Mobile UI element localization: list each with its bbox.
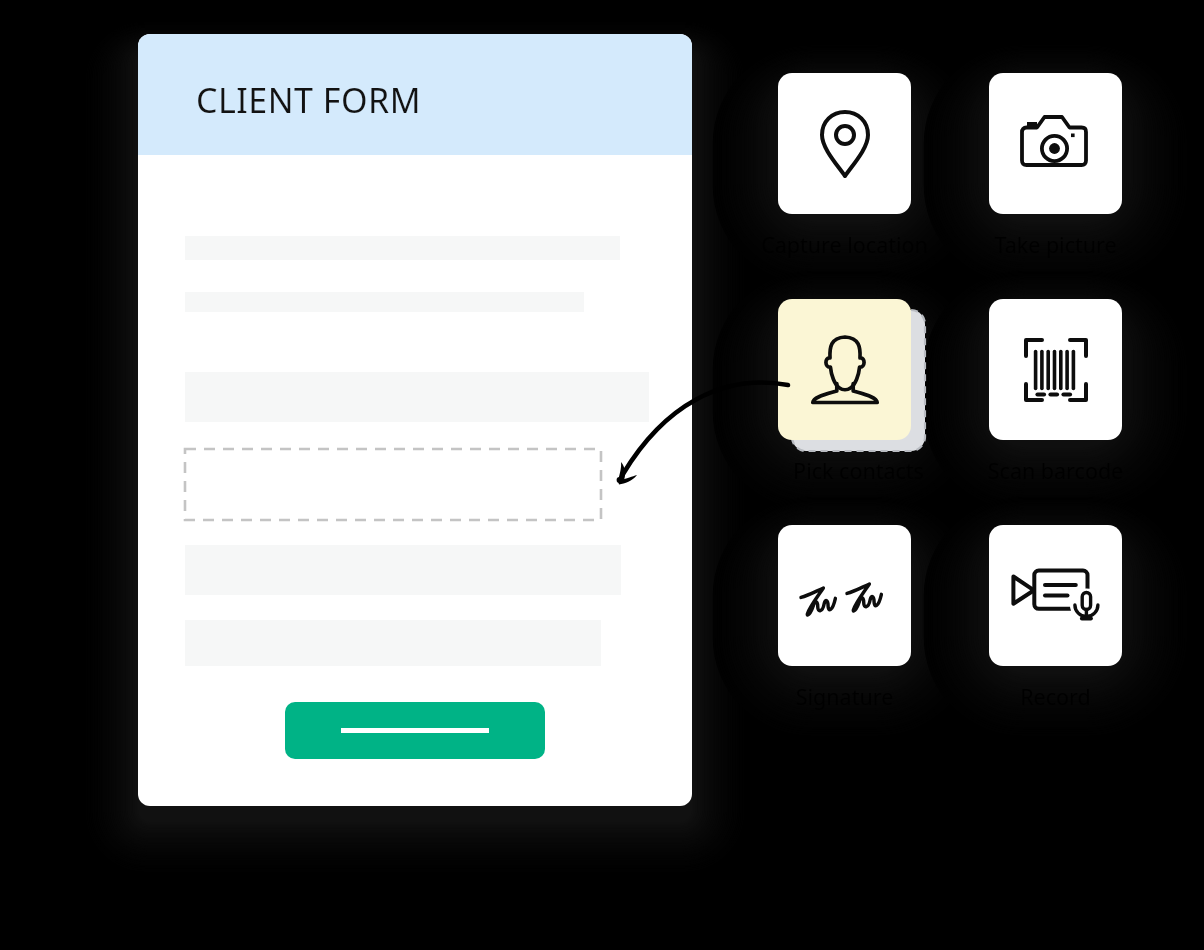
staticText: CLIENT FORM	[196, 77, 422, 123]
button[interactable]: Scan barcode	[989, 299, 1122, 440]
staticText: Scan barcode	[944, 456, 1167, 485]
button[interactable]: Signature	[778, 525, 911, 666]
button[interactable]: Submit	[285, 702, 545, 759]
button[interactable]: Record	[989, 525, 1122, 666]
button[interactable]: Pick contacts	[778, 299, 911, 440]
button[interactable]: Capture location	[778, 73, 911, 214]
button[interactable]: Take picture	[989, 73, 1122, 214]
staticText: Capture location	[733, 230, 956, 259]
